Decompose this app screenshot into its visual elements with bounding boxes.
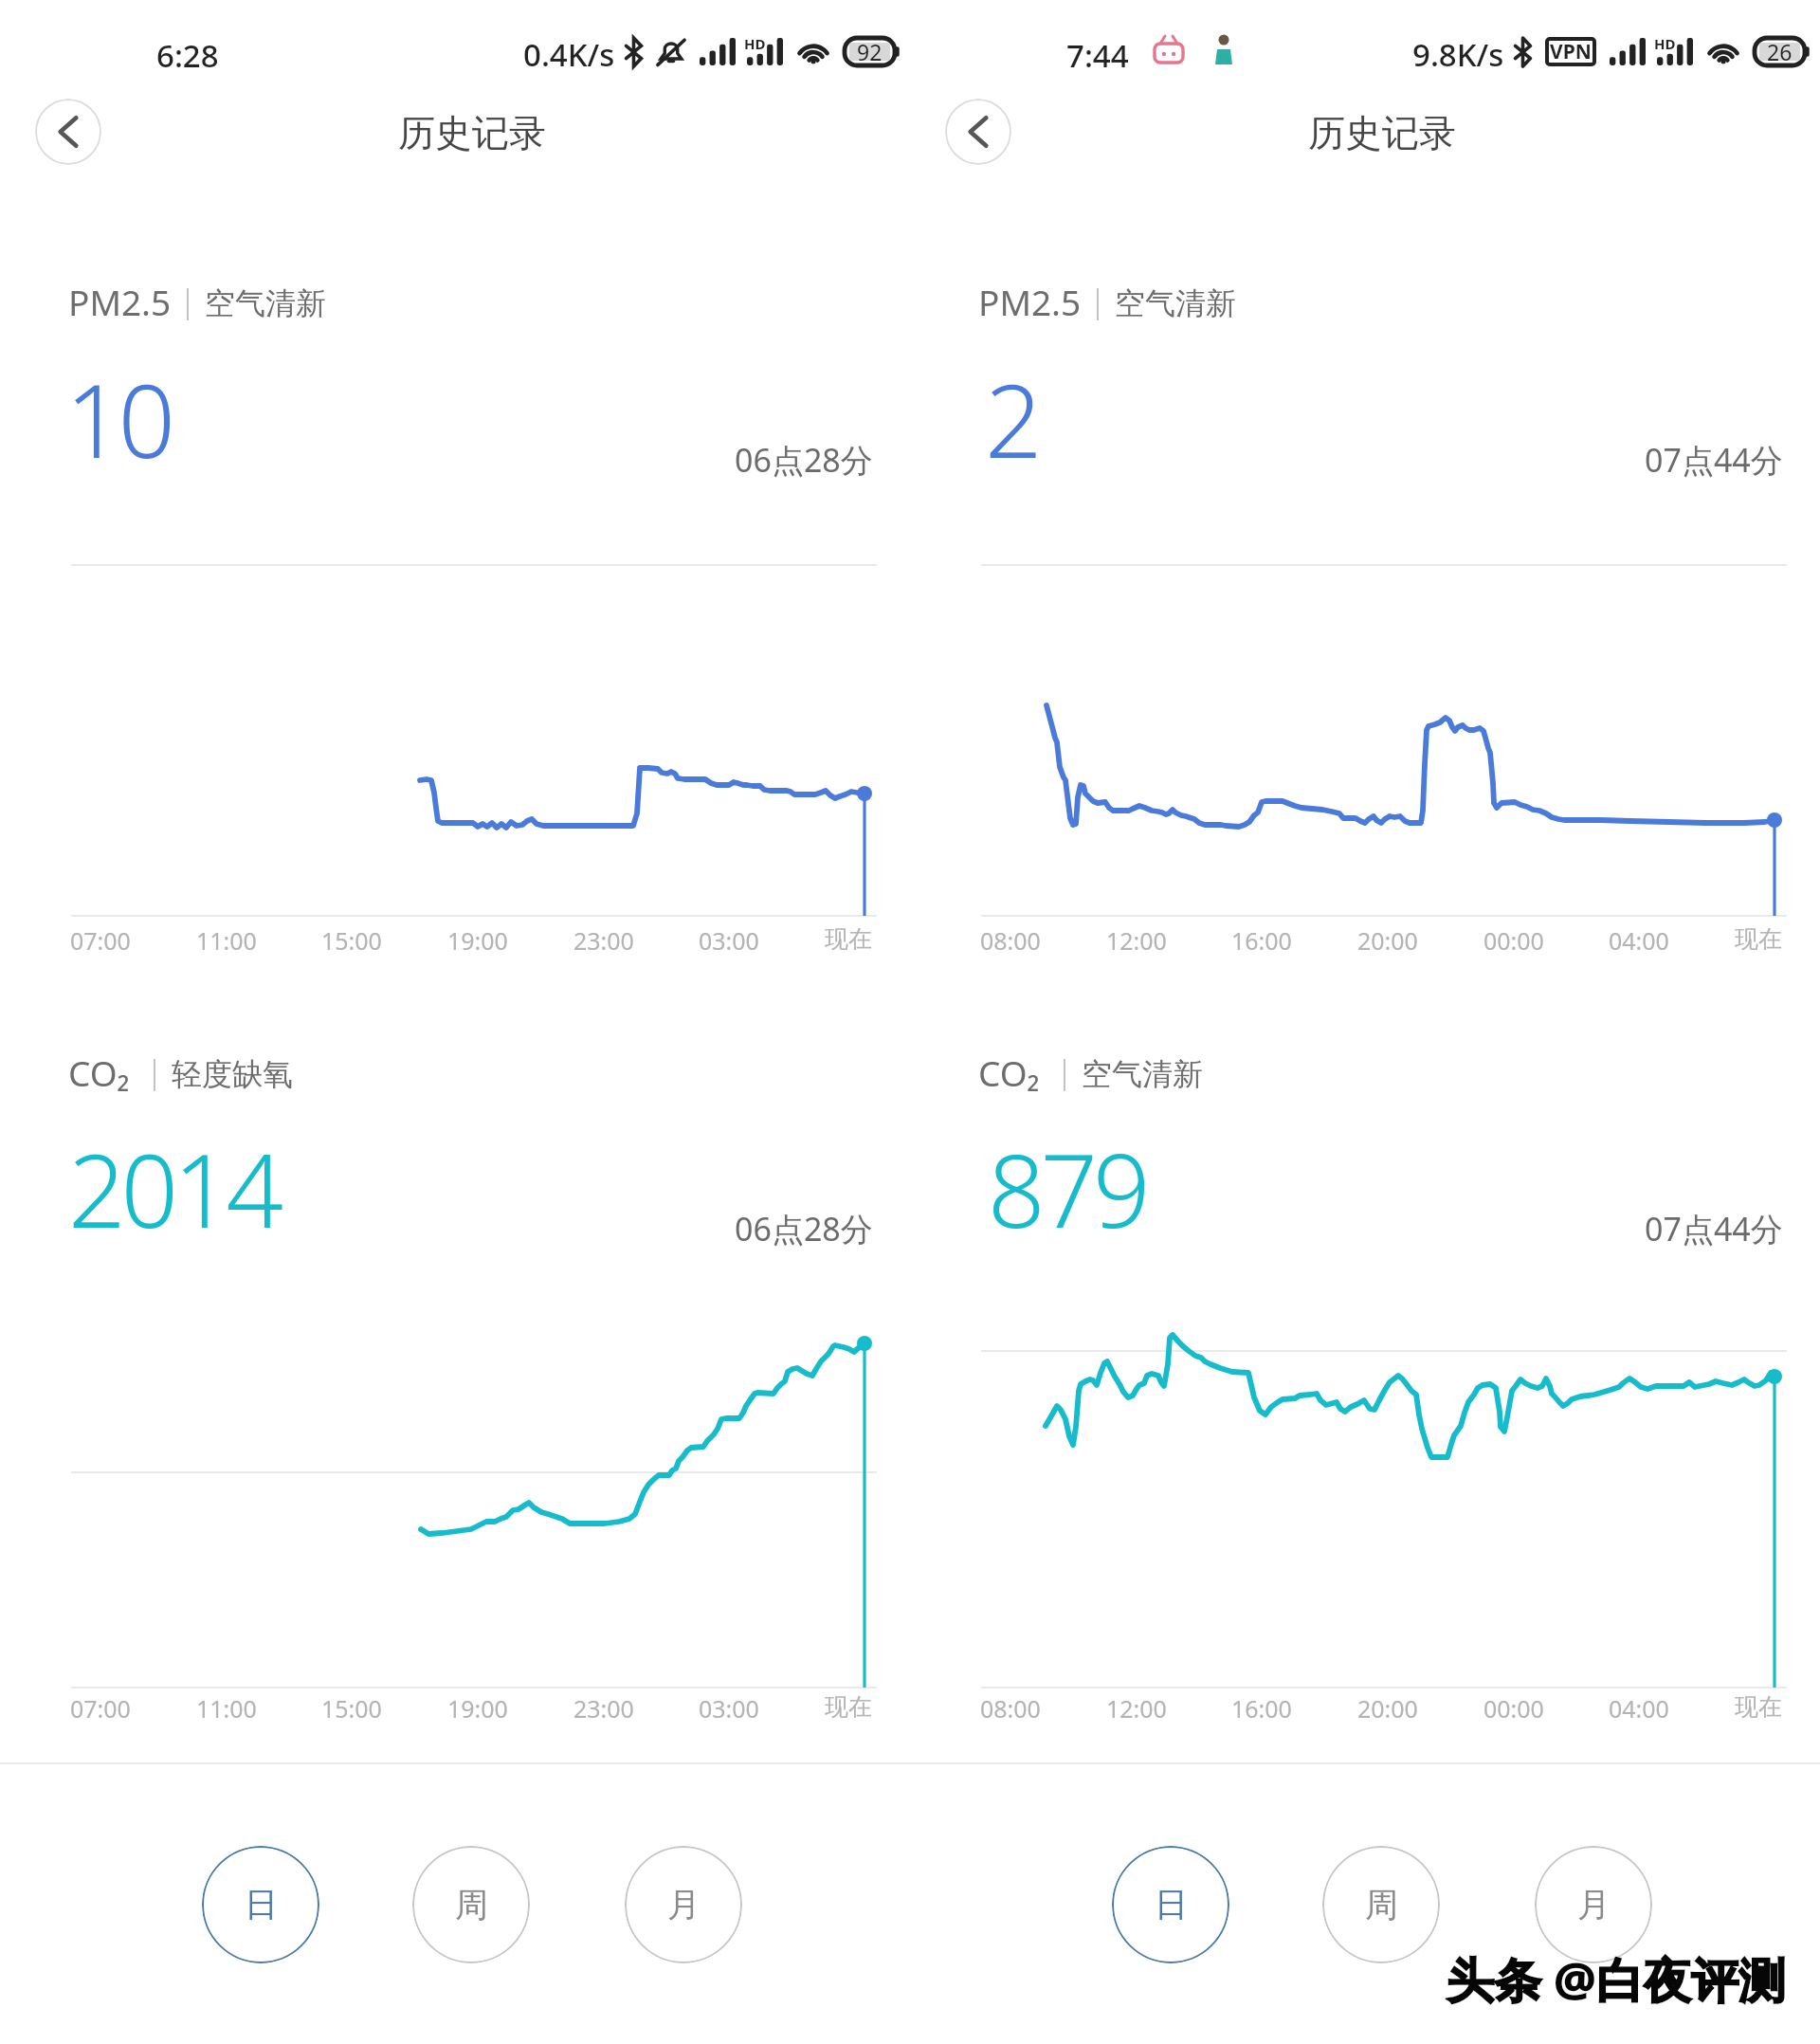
staticText: HD <box>744 34 766 53</box>
staticText: 26 <box>1767 37 1793 66</box>
staticText: 6:28 <box>156 34 219 77</box>
staticText: 03:00 <box>699 924 759 957</box>
staticText: 879 <box>988 1121 1146 1257</box>
staticText: VPN <box>1550 38 1592 65</box>
staticText: 15:00 <box>321 924 382 957</box>
staticText: 00:00 <box>1483 924 1544 957</box>
staticText: 16:00 <box>1231 924 1292 957</box>
staticText: 08:00 <box>980 1692 1041 1725</box>
staticText: 周 <box>1365 1884 1398 1925</box>
staticText: 11:00 <box>196 1692 257 1725</box>
staticText: 03:00 <box>699 1692 759 1725</box>
staticText: 月 <box>1577 1884 1611 1925</box>
staticText: CO₂ <box>68 1049 130 1096</box>
staticText: 现在 <box>1735 1692 1782 1722</box>
staticText: PM2.5 <box>68 278 172 325</box>
staticText: CO₂ <box>978 1049 1040 1096</box>
staticText: 19:00 <box>447 1692 508 1725</box>
staticText: 07点44分 <box>1645 1207 1783 1250</box>
staticText: 20:00 <box>1357 924 1418 957</box>
staticText: 2014 <box>68 1121 280 1257</box>
staticText: 历史记录 <box>398 110 546 156</box>
staticText: HD <box>1654 34 1676 53</box>
staticText: 16:00 <box>1231 1692 1292 1725</box>
staticText: 周 <box>455 1884 488 1925</box>
staticText: 现在 <box>825 1692 872 1722</box>
staticText: 07:00 <box>70 924 131 957</box>
staticText: 12:00 <box>1106 924 1167 957</box>
staticText: 12:00 <box>1106 1692 1167 1725</box>
staticText: 历史记录 <box>1308 110 1456 156</box>
staticText: 06点28分 <box>735 438 873 482</box>
staticText: 现在 <box>1735 924 1782 954</box>
staticText: 07:00 <box>70 1692 131 1725</box>
button[interactable]: 月 <box>1535 1846 1652 1963</box>
staticText: 04:00 <box>1609 1692 1669 1725</box>
staticText: 空气清新 <box>205 284 326 322</box>
button[interactable]: Back <box>35 99 101 165</box>
staticText: 00:00 <box>1483 1692 1544 1725</box>
staticText: 15:00 <box>321 1692 382 1725</box>
staticText: 07点44分 <box>1645 438 1783 482</box>
staticText: 7:44 <box>1066 34 1129 77</box>
staticText: 23:00 <box>573 1692 634 1725</box>
staticText: 92 <box>857 37 883 66</box>
button[interactable]: 周 <box>412 1846 530 1963</box>
staticText: 0.4K/s <box>523 33 615 76</box>
staticText: 19:00 <box>447 924 508 957</box>
staticText: 日 <box>1155 1884 1188 1925</box>
staticText: 空气清新 <box>1082 1055 1203 1093</box>
staticText: 2 <box>985 351 1038 487</box>
staticText: 9.8K/s <box>1412 33 1504 76</box>
staticText: 04:00 <box>1609 924 1669 957</box>
staticText: 现在 <box>825 924 872 954</box>
staticText: 日 <box>245 1884 278 1925</box>
button[interactable]: 日 <box>202 1846 319 1963</box>
button[interactable]: Back <box>945 99 1011 165</box>
staticText: 08:00 <box>980 924 1041 957</box>
button[interactable]: 月 <box>625 1846 742 1963</box>
staticText: 20:00 <box>1357 1692 1418 1725</box>
staticText: 11:00 <box>196 924 257 957</box>
staticText: 06点28分 <box>735 1207 873 1250</box>
staticText: 23:00 <box>573 924 634 957</box>
button[interactable]: 周 <box>1322 1846 1440 1963</box>
staticText: 头条 @白夜评测 <box>1447 1947 1786 2012</box>
button[interactable]: 日 <box>1112 1846 1229 1963</box>
staticText: 月 <box>667 1884 701 1925</box>
staticText: 轻度缺氧 <box>172 1055 293 1093</box>
staticText: 10 <box>65 351 172 487</box>
staticText: 空气清新 <box>1115 284 1236 322</box>
staticText: PM2.5 <box>978 278 1082 325</box>
